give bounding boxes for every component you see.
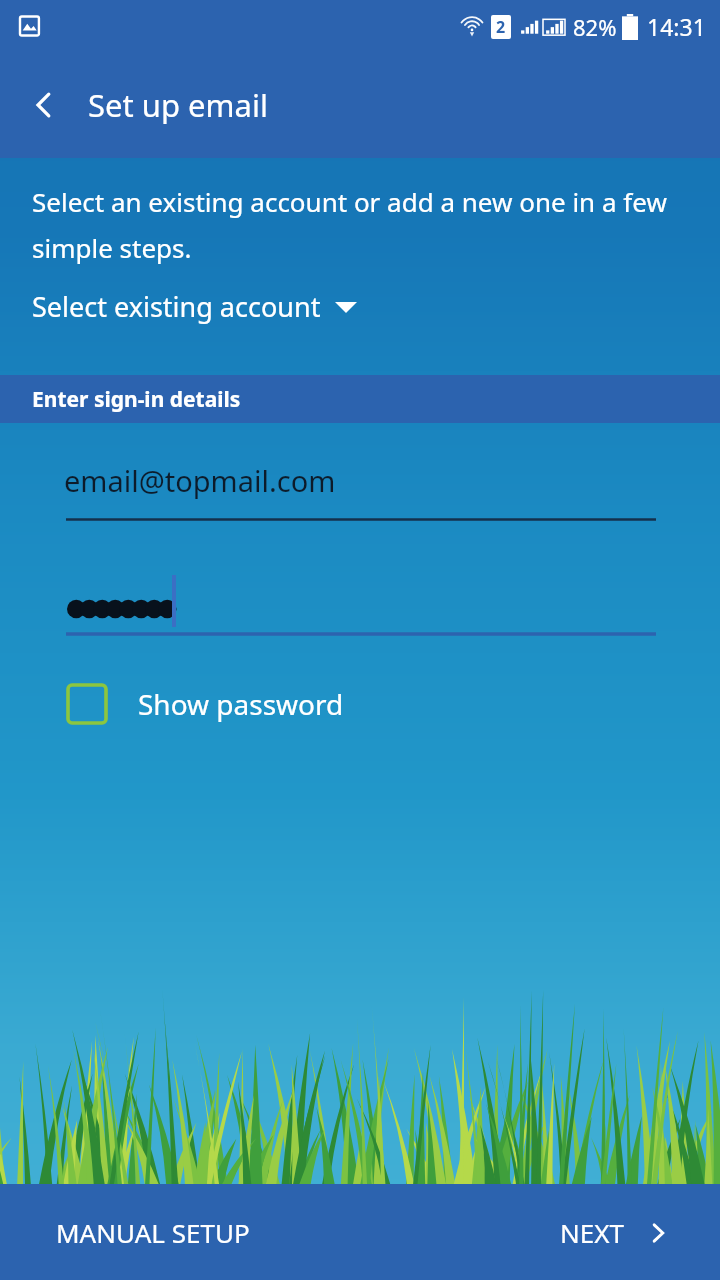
button[interactable]: Back — [12, 73, 76, 137]
staticText: Set up email — [88, 84, 268, 126]
staticText: Select existing account — [32, 288, 321, 325]
staticText: MANUAL SETUP — [56, 1215, 250, 1250]
button[interactable] — [66, 518, 656, 521]
button[interactable]: Show password — [62, 681, 354, 727]
button[interactable] — [66, 632, 656, 636]
staticText: 2 — [496, 16, 506, 38]
button[interactable]: NEXT — [546, 1203, 684, 1262]
staticText: Show password — [138, 685, 344, 723]
staticText: Select an existing account or add a new … — [32, 184, 694, 266]
staticText: email@topmail.com — [64, 461, 336, 500]
button[interactable]: MANUAL SETUP — [40, 1203, 266, 1262]
button[interactable]: Select existing account — [32, 288, 357, 325]
staticText: Enter sign-in details — [32, 385, 241, 414]
staticText: 14:31 — [647, 11, 706, 42]
staticText: NEXT — [560, 1215, 624, 1250]
staticText: 82% — [573, 12, 617, 42]
